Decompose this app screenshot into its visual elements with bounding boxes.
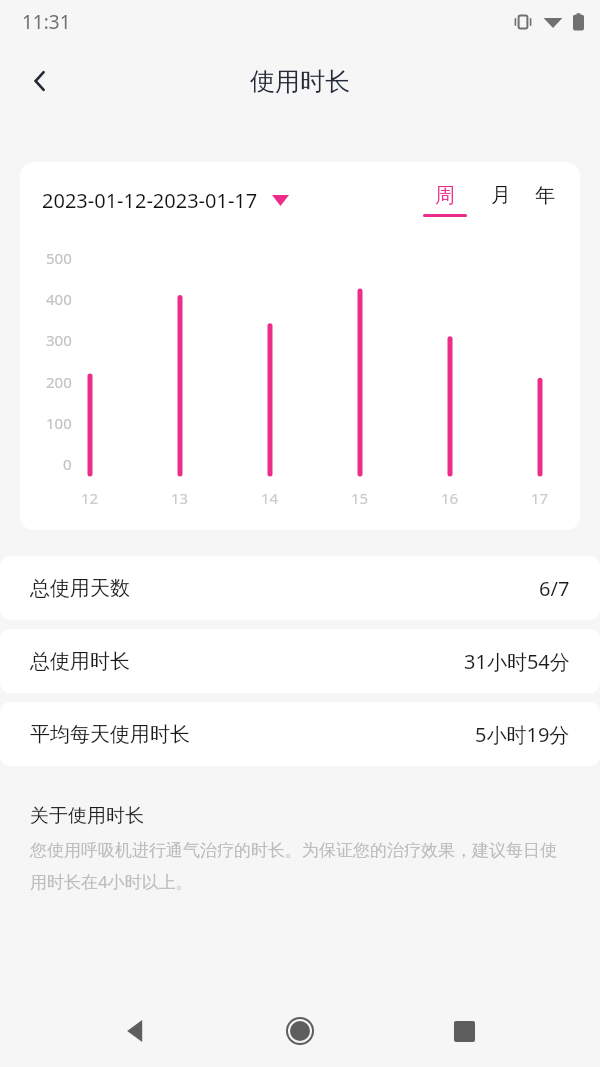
button[interactable]: 总使用天数 [0, 556, 600, 620]
button[interactable]: Back [108, 1003, 164, 1059]
staticText: 100 [46, 413, 72, 433]
button[interactable]: 2023-01-12-2023-01-17 [42, 187, 289, 214]
staticText: 200 [46, 372, 72, 392]
staticText: 年 [535, 183, 555, 208]
staticText: 13 [171, 488, 189, 508]
button[interactable]: Home [272, 1003, 328, 1059]
staticText: 16 [441, 488, 459, 508]
staticText: 500 [46, 248, 72, 268]
staticText: 月 [491, 183, 511, 208]
staticText: 2023-01-12-2023-01-17 [42, 187, 258, 214]
staticText: 0 [63, 454, 72, 474]
button[interactable]: 平均每天使用时长 [0, 702, 600, 766]
staticText: 使用时长 [250, 66, 350, 97]
button[interactable]: Back [14, 55, 66, 107]
staticText: 17 [531, 488, 549, 508]
staticText: 300 [46, 330, 72, 350]
button[interactable]: 月 [488, 183, 514, 217]
button[interactable]: 总使用时长 [0, 629, 600, 693]
staticText: 11:31 [22, 9, 71, 35]
staticText: 您使用呼吸机进行通气治疗的时长。为保证您的治疗效果，建议每日使用时长在4小时以上… [30, 840, 568, 893]
staticText: 平均每天使用时长 [30, 722, 190, 747]
button[interactable]: Recents [436, 1003, 492, 1059]
button[interactable]: 年 [532, 183, 558, 217]
staticText: 14 [261, 488, 279, 508]
staticText: 400 [46, 289, 72, 309]
staticText: 15 [351, 488, 369, 508]
staticText: 6/7 [539, 575, 570, 602]
staticText: 总使用时长 [30, 649, 130, 674]
staticText: 总使用天数 [30, 576, 130, 601]
staticText: 31小时54分 [464, 648, 570, 675]
button[interactable]: 周 [420, 183, 470, 217]
staticText: 5小时19分 [475, 721, 570, 748]
staticText: 关于使用时长 [30, 804, 144, 828]
staticText: 周 [435, 183, 455, 208]
staticText: 12 [81, 488, 99, 508]
